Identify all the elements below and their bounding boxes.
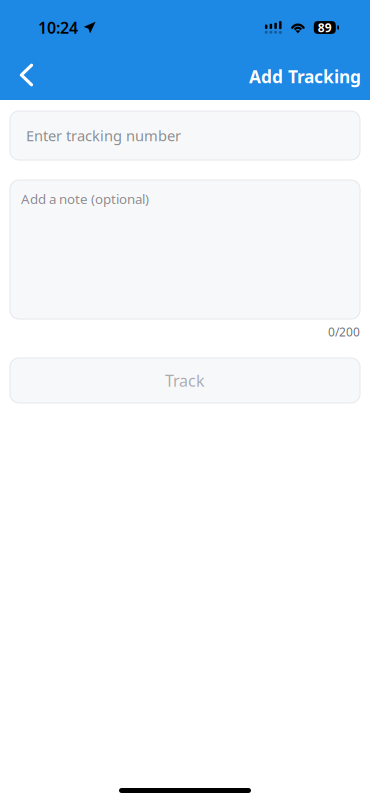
button[interactable]: Track xyxy=(10,358,360,403)
button[interactable]: Back xyxy=(6,55,47,100)
staticText: 10:24 xyxy=(38,17,78,38)
staticText: Add Tracking xyxy=(249,65,361,88)
staticText: Track xyxy=(165,370,205,391)
staticText: Add a note (optional) xyxy=(21,190,149,208)
staticText: 89 xyxy=(318,19,332,35)
staticText: Enter tracking number xyxy=(26,126,181,145)
staticText: 0/200 xyxy=(328,324,360,340)
